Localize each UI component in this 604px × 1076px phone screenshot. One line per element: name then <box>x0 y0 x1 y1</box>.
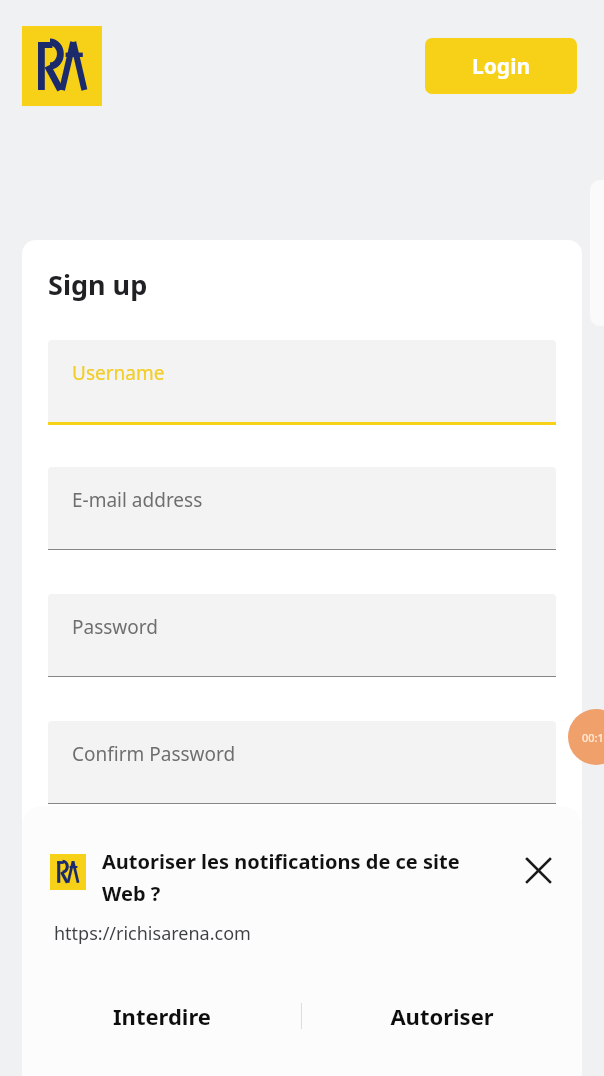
staticText: Login <box>472 52 531 81</box>
button[interactable]: Login <box>425 38 577 94</box>
button[interactable]: E-mail address <box>48 467 556 549</box>
button[interactable]: Richis Arena home <box>22 26 102 106</box>
button[interactable]: Password <box>48 594 556 676</box>
staticText: Confirm Password <box>72 741 236 767</box>
staticText: Autoriser <box>390 1001 494 1031</box>
staticText: E-mail address <box>72 487 203 513</box>
staticText: Autoriser les notifications de ce site W… <box>102 848 506 907</box>
staticText: Interdire <box>113 1001 211 1031</box>
staticText: Sign up <box>48 266 148 303</box>
button[interactable]: Interdire <box>22 980 301 1052</box>
button[interactable]: Autoriser <box>302 980 582 1052</box>
staticText: 00:10 <box>582 730 604 745</box>
staticText: Password <box>72 614 158 640</box>
staticText: Username <box>72 360 165 386</box>
staticText: https://richisarena.com <box>54 921 251 946</box>
button[interactable]: Confirm Password <box>48 721 556 803</box>
button[interactable]: Username <box>48 340 556 422</box>
button[interactable]: Close <box>516 848 560 892</box>
button[interactable]: Timer <box>568 709 604 765</box>
